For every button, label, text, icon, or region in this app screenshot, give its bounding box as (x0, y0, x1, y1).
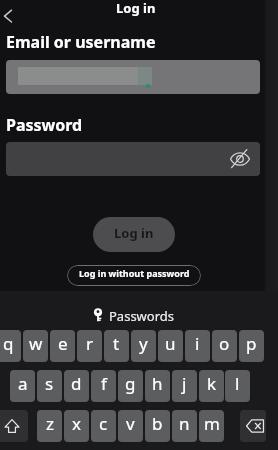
staticText: Log in (116, 0, 156, 17)
button[interactable]: p (239, 330, 264, 362)
staticText: y (139, 332, 148, 355)
staticText: s (45, 372, 54, 395)
button[interactable]: f (91, 370, 116, 402)
staticText: Passwords (109, 307, 175, 325)
staticText: Log in (114, 224, 154, 242)
button[interactable]: x (64, 410, 89, 442)
button[interactable]: t (104, 330, 129, 362)
button[interactable] (6, 60, 260, 94)
button[interactable]: Show password (229, 148, 251, 170)
button[interactable]: v (118, 410, 143, 442)
button[interactable]: q (0, 330, 21, 362)
button[interactable]: w (23, 330, 48, 362)
staticText: a (18, 372, 28, 395)
button[interactable]: l (225, 370, 250, 402)
staticText: f (101, 372, 107, 395)
button[interactable]: b (145, 410, 170, 442)
staticText: Log in without password (79, 267, 190, 279)
staticText: i (195, 332, 200, 355)
button[interactable]: e (50, 330, 75, 362)
staticText: k (207, 372, 217, 395)
button[interactable]: y (131, 330, 156, 362)
staticText: q (3, 332, 14, 355)
staticText: m (204, 412, 220, 435)
button[interactable]: o (212, 330, 237, 362)
button[interactable]: c (91, 410, 116, 442)
button[interactable]: s (37, 370, 62, 402)
button[interactable]: Log in without password (67, 265, 201, 286)
staticText: x (72, 412, 81, 435)
staticText: v (126, 412, 135, 435)
staticText: Email or username (6, 31, 156, 53)
staticText: r (86, 332, 94, 355)
staticText: c (99, 412, 108, 435)
button[interactable]: Log in (93, 217, 175, 252)
button[interactable]: u (158, 330, 183, 362)
staticText: p (246, 332, 257, 355)
staticText: u (165, 332, 176, 355)
staticText: e (58, 332, 68, 355)
button[interactable]: Passwords (88, 296, 184, 322)
staticText: l (235, 372, 240, 395)
button[interactable]: m (199, 410, 224, 442)
button[interactable]: k (199, 370, 224, 402)
staticText: Password (6, 114, 83, 136)
button[interactable]: d (64, 370, 89, 402)
button[interactable]: h (145, 370, 170, 402)
staticText: t (113, 332, 120, 355)
staticText: h (152, 372, 163, 395)
staticText: j (182, 372, 187, 395)
staticText: w (29, 332, 43, 355)
button[interactable]: r (77, 330, 102, 362)
staticText: d (71, 372, 82, 395)
button[interactable]: i (185, 330, 210, 362)
staticText: o (219, 332, 230, 355)
button[interactable]: z (37, 410, 62, 442)
button[interactable]: j (172, 370, 197, 402)
staticText: n (179, 412, 190, 435)
staticText: g (125, 372, 136, 395)
button[interactable]: Back (0, 4, 20, 28)
button[interactable]: a (10, 370, 35, 402)
staticText: b (152, 412, 163, 435)
button[interactable]: n (172, 410, 197, 442)
button[interactable]: Shift (0, 410, 28, 442)
button[interactable]: Show password (6, 142, 260, 176)
staticText: z (46, 412, 54, 435)
button[interactable]: Backspace (240, 410, 266, 442)
button[interactable]: g (118, 370, 143, 402)
